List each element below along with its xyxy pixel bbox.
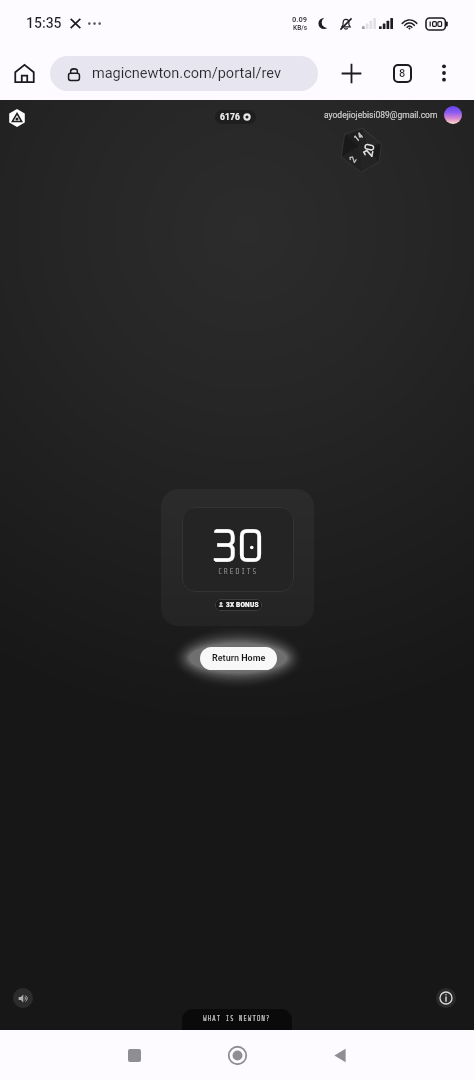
staticText: CREDITS	[218, 567, 259, 576]
button[interactable]: WHAT IS NEWTON?	[182, 1009, 292, 1030]
staticText: 15:35	[26, 15, 62, 31]
staticText: ayodejiojebisi089@gmail.com	[324, 110, 438, 120]
button[interactable]: Magic Newton logo	[8, 109, 26, 127]
button[interactable]: magicnewton.com/portal/rev	[50, 56, 318, 91]
staticText: 0.09	[292, 15, 308, 24]
button[interactable]: New tab	[329, 51, 373, 95]
staticText: magicnewton.com/portal/rev	[92, 65, 281, 82]
staticText: KB/s	[293, 24, 308, 32]
staticText: WHAT IS NEWTON?	[203, 1015, 271, 1023]
button[interactable]: More options	[422, 51, 466, 95]
button[interactable]: Information	[436, 988, 456, 1008]
button[interactable]: 6176	[220, 112, 251, 122]
button[interactable]: Home	[215, 1033, 259, 1077]
staticText: 30	[211, 525, 265, 570]
button[interactable]: Recent apps	[112, 1033, 156, 1077]
button[interactable]: Home	[2, 51, 46, 95]
button[interactable]: 3X BONUS	[215, 599, 262, 611]
staticText: 6176	[220, 112, 240, 122]
button[interactable]: Account avatar	[444, 106, 462, 124]
staticText: 8	[399, 67, 406, 80]
staticText: Return Home	[212, 653, 266, 664]
button[interactable]: Toggle sound	[13, 988, 33, 1008]
button[interactable]: Back	[318, 1033, 362, 1077]
button[interactable]: Return Home	[200, 647, 277, 670]
staticText: 3X BONUS	[226, 601, 259, 609]
button[interactable]: Tabs: 8 open	[380, 51, 424, 95]
